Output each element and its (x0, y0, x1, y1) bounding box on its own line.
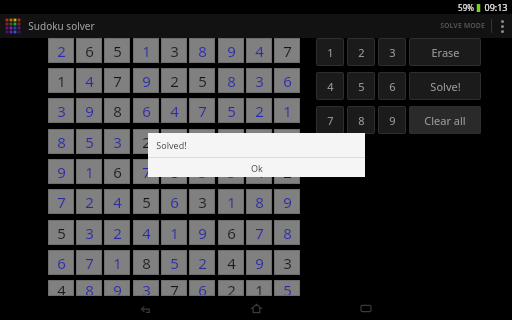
button[interactable]: 7 (48, 189, 74, 214)
button[interactable]: 1 (274, 98, 300, 123)
button[interactable]: 9 (189, 220, 215, 245)
button[interactable]: 6 (133, 98, 159, 123)
button[interactable]: 4 (161, 98, 187, 123)
button[interactable]: 3 (246, 68, 272, 93)
button[interactable]: 6 (274, 68, 300, 93)
button[interactable]: 1 (133, 38, 159, 63)
button[interactable]: 2 (133, 129, 159, 154)
button[interactable]: More options (492, 14, 512, 38)
button[interactable]: 9 (76, 98, 102, 123)
button[interactable]: 4 (246, 38, 272, 63)
button[interactable]: 9 (161, 129, 187, 154)
button[interactable]: 4 (48, 280, 74, 296)
button[interactable]: 5 (133, 189, 159, 214)
button[interactable]: 3 (378, 38, 406, 66)
button[interactable]: 9 (133, 68, 159, 93)
button[interactable]: 8 (189, 38, 215, 63)
button[interactable]: 5 (104, 38, 130, 63)
button[interactable]: 7 (246, 220, 272, 245)
button[interactable]: 6 (218, 220, 244, 245)
button[interactable]: 9 (246, 250, 272, 275)
button[interactable]: 3 (274, 250, 300, 275)
button[interactable]: 8 (104, 98, 130, 123)
button[interactable]: 5 (218, 159, 244, 184)
button[interactable]: 5 (189, 68, 215, 93)
button[interactable]: Erase (409, 38, 481, 66)
button[interactable]: 9 (48, 159, 74, 184)
button[interactable]: 7 (274, 38, 300, 63)
button[interactable]: 6 (48, 250, 74, 275)
button[interactable]: 2 (189, 250, 215, 275)
button[interactable]: 6 (189, 280, 215, 296)
button[interactable]: 1 (218, 189, 244, 214)
button[interactable]: 7 (218, 129, 244, 154)
button[interactable]: 4 (133, 220, 159, 245)
button[interactable]: 2 (347, 38, 375, 66)
button[interactable]: 8 (274, 220, 300, 245)
button[interactable]: 2 (48, 38, 74, 63)
button[interactable]: 5 (347, 72, 375, 100)
button[interactable]: 1 (316, 38, 344, 66)
button[interactable]: 9 (104, 280, 130, 296)
button[interactable]: 1 (104, 250, 130, 275)
button[interactable]: 1 (48, 68, 74, 93)
button[interactable]: 7 (104, 68, 130, 93)
button[interactable]: 8 (246, 189, 272, 214)
button[interactable]: 1 (274, 129, 300, 154)
button[interactable]: 3 (104, 129, 130, 154)
button[interactable]: Back (114, 296, 178, 320)
button[interactable]: SOLVE MODE (434, 17, 491, 35)
button[interactable]: 7 (161, 280, 187, 296)
button[interactable]: Ok (148, 158, 365, 177)
button[interactable]: 4 (218, 250, 244, 275)
button[interactable]: 8 (347, 106, 375, 134)
button[interactable]: 9 (378, 106, 406, 134)
staticText: 5 (142, 192, 151, 212)
button[interactable]: 8 (133, 250, 159, 275)
button[interactable]: 6 (161, 189, 187, 214)
button[interactable]: 8 (161, 159, 187, 184)
button[interactable]: 6 (76, 38, 102, 63)
button[interactable]: 2 (161, 68, 187, 93)
button[interactable]: 3 (161, 38, 187, 63)
button[interactable]: 2 (76, 189, 102, 214)
button[interactable]: 5 (274, 280, 300, 296)
button[interactable]: 1 (246, 280, 272, 296)
button[interactable]: 7 (133, 159, 159, 184)
button[interactable]: 5 (218, 98, 244, 123)
button[interactable]: Clear all (409, 106, 481, 134)
button[interactable]: 1 (161, 220, 187, 245)
button[interactable]: 2 (246, 98, 272, 123)
button[interactable]: 2 (274, 159, 300, 184)
button[interactable]: 6 (104, 159, 130, 184)
button[interactable]: 4 (246, 159, 272, 184)
button[interactable]: Recent apps (334, 296, 398, 320)
button[interactable]: 2 (218, 280, 244, 296)
button[interactable]: 7 (189, 98, 215, 123)
button[interactable]: Home (224, 296, 288, 320)
button[interactable]: 5 (161, 250, 187, 275)
button[interactable]: 4 (104, 189, 130, 214)
button[interactable]: 9 (274, 189, 300, 214)
button[interactable]: 7 (316, 106, 344, 134)
button[interactable]: 3 (133, 280, 159, 296)
button[interactable]: 8 (76, 280, 102, 296)
button[interactable]: 4 (189, 129, 215, 154)
button[interactable]: 2 (104, 220, 130, 245)
button[interactable]: 9 (218, 38, 244, 63)
button[interactable]: 8 (218, 68, 244, 93)
button[interactable]: 5 (48, 220, 74, 245)
button[interactable]: 7 (76, 250, 102, 275)
button[interactable]: 1 (76, 159, 102, 184)
button[interactable]: 3 (189, 189, 215, 214)
button[interactable]: 4 (316, 72, 344, 100)
button[interactable]: 3 (48, 98, 74, 123)
button[interactable]: 6 (378, 72, 406, 100)
button[interactable]: 5 (76, 129, 102, 154)
button[interactable]: Solve! (409, 72, 481, 100)
button[interactable]: 3 (189, 159, 215, 184)
button[interactable]: 8 (48, 129, 74, 154)
button[interactable]: 4 (76, 68, 102, 93)
button[interactable]: 3 (76, 220, 102, 245)
button[interactable]: 6 (246, 129, 272, 154)
